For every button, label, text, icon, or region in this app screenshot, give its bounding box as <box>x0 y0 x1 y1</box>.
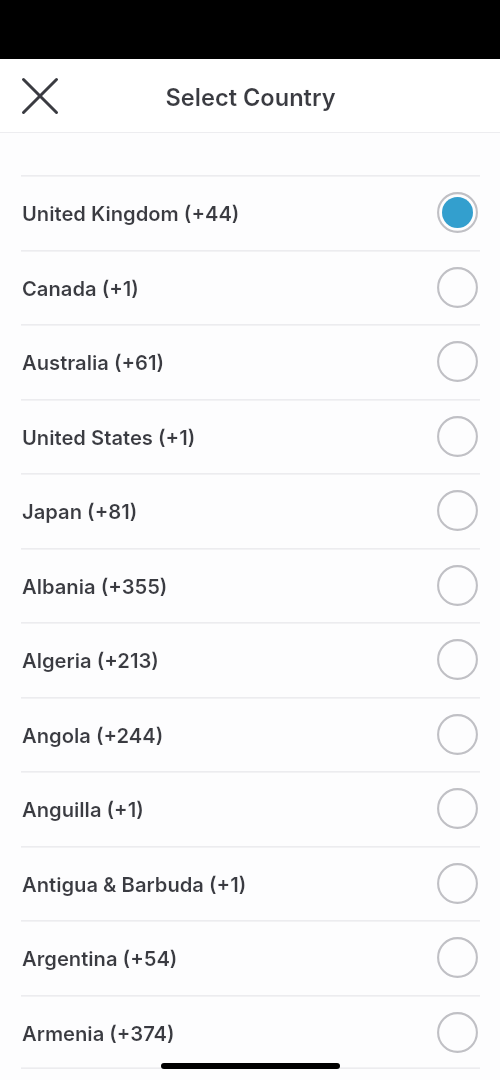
button[interactable]: United States (+1) <box>0 399 500 473</box>
button[interactable]: Angola (+244) <box>0 697 500 771</box>
button[interactable]: Argentina (+54) <box>0 920 500 994</box>
staticText: United States (+1) <box>22 425 437 449</box>
button[interactable]: Armenia (+374) <box>0 995 500 1069</box>
staticText: Japan (+81) <box>22 499 437 523</box>
staticText: Algeria (+213) <box>22 648 437 672</box>
staticText: United Kingdom (+44) <box>22 201 437 225</box>
button[interactable]: Algeria (+213) <box>0 622 500 696</box>
button[interactable]: Antigua & Barbuda (+1) <box>0 846 500 920</box>
button[interactable]: United Kingdom (+44) <box>0 175 500 249</box>
staticText: Albania (+355) <box>22 574 437 598</box>
staticText: Select Country <box>165 83 336 112</box>
button[interactable]: Canada (+1) <box>0 250 500 324</box>
staticText: Angola (+244) <box>22 723 437 747</box>
button[interactable]: Japan (+81) <box>0 473 500 547</box>
staticText: Australia (+61) <box>22 350 437 374</box>
staticText: Anguilla (+1) <box>22 797 437 821</box>
button[interactable]: Australia (+61) <box>0 324 500 398</box>
staticText: Canada (+1) <box>22 276 437 300</box>
button[interactable]: Close <box>13 69 67 123</box>
staticText: Armenia (+374) <box>22 1021 437 1045</box>
staticText: Antigua & Barbuda (+1) <box>22 872 437 896</box>
button[interactable]: Anguilla (+1) <box>0 771 500 845</box>
button[interactable]: Albania (+355) <box>0 548 500 622</box>
staticText: Argentina (+54) <box>22 946 437 970</box>
